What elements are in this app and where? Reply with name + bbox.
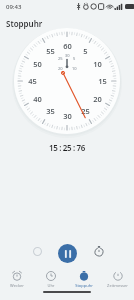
staticText: 09:43 — [6, 3, 22, 11]
button[interactable]: Uhr — [34, 270, 67, 289]
button[interactable]: Zeitmesser — [101, 270, 134, 289]
staticText: Stoppuhr — [6, 18, 43, 29]
staticText: 10 — [93, 59, 102, 69]
staticText: Stoppuhr — [75, 283, 93, 288]
staticText: 20 — [93, 94, 102, 104]
button[interactable]: Zurücksetzen — [88, 240, 110, 262]
button[interactable]: Wecker — [0, 270, 33, 289]
button[interactable]: Stoppuhr — [67, 270, 100, 289]
staticText: 55 — [46, 46, 55, 56]
button[interactable]: Runde — [26, 240, 48, 262]
staticText: 45 — [28, 76, 37, 86]
staticText: 40 — [33, 94, 42, 104]
staticText: 20 — [58, 66, 63, 71]
staticText: 25 — [58, 56, 63, 61]
staticText: 5 — [73, 56, 76, 61]
staticText: 35 — [46, 106, 55, 116]
staticText: 50 — [33, 59, 42, 69]
staticText: Uhr — [47, 283, 55, 288]
staticText: Wecker — [10, 283, 24, 288]
staticText: 60 — [63, 41, 72, 51]
staticText: 5 — [83, 46, 88, 56]
staticText: 15 : 25 : 76 — [49, 142, 85, 153]
button[interactable]: Pause — [58, 244, 77, 263]
staticText: Zeitmesser — [107, 283, 128, 288]
staticText: 10 — [72, 66, 77, 71]
staticText: 15 — [98, 76, 107, 86]
staticText: 25 — [81, 106, 90, 116]
staticText: 30 — [65, 53, 70, 58]
staticText: 30 — [63, 111, 72, 121]
